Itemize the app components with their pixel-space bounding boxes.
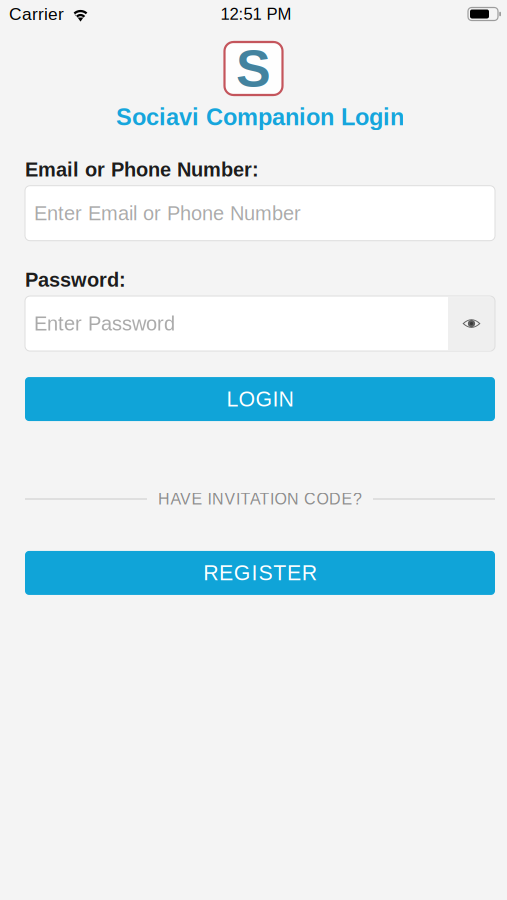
button[interactable]: REGISTER xyxy=(25,551,495,595)
staticText: S xyxy=(236,39,271,98)
staticText: Sociavi Companion Login xyxy=(116,104,404,130)
staticText: Email or Phone Number: xyxy=(25,158,259,181)
button[interactable]: Show password xyxy=(448,297,495,350)
staticText: Enter Password xyxy=(34,312,175,335)
staticText: Carrier xyxy=(9,4,64,24)
staticText: LOGIN xyxy=(226,387,293,411)
button[interactable]: LOGIN xyxy=(25,377,495,421)
staticText: Password: xyxy=(25,269,126,291)
staticText: 12:51 PM xyxy=(220,5,291,23)
staticText: REGISTER xyxy=(203,561,317,585)
staticText: HAVE INVITATION CODE? xyxy=(158,490,362,508)
staticText: Enter Email or Phone Number xyxy=(34,202,301,224)
